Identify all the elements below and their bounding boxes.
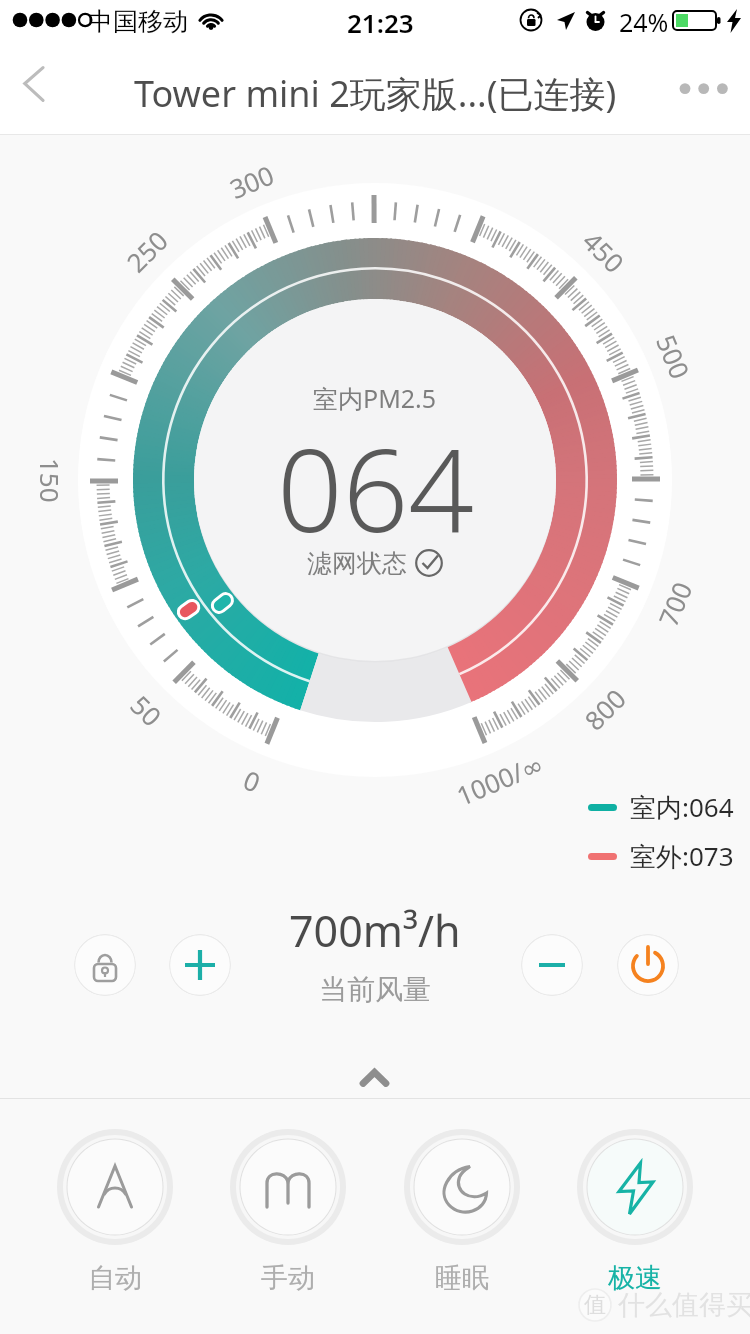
staticText: 当前风量 — [319, 972, 431, 1007]
staticText: 滤网状态 — [307, 548, 407, 579]
staticText: 300 — [224, 156, 279, 206]
button[interactable]: 睡眠 — [404, 1129, 520, 1295]
staticText: 室内PM2.5 — [313, 381, 437, 415]
staticText: 什么值得买 — [618, 1288, 750, 1322]
button[interactable]: Child lock — [74, 934, 136, 996]
staticText: 21:23 — [347, 5, 414, 40]
staticText: 50 — [124, 687, 170, 733]
button[interactable]: 手动 — [230, 1129, 346, 1295]
staticText: 1000/∞ — [451, 746, 548, 813]
staticText: 500 — [649, 329, 699, 384]
button[interactable]: 自动 — [57, 1129, 173, 1295]
staticText: 150 — [33, 458, 68, 503]
button[interactable]: Power — [617, 934, 679, 996]
staticText: 室内:064 — [630, 789, 734, 825]
button[interactable]: Decrease fan speed — [521, 934, 583, 996]
button[interactable]: Expand panel — [330, 1058, 420, 1098]
staticText: 700 — [650, 576, 699, 631]
button[interactable]: More options — [672, 56, 750, 134]
staticText: 手动 — [261, 1261, 315, 1295]
staticText: Tower mini 2玩家版...(已连接) — [134, 69, 617, 118]
staticText: 450 — [576, 223, 632, 280]
staticText: 064 — [277, 409, 474, 566]
staticText: 250 — [118, 223, 175, 279]
staticText: 自动 — [88, 1261, 142, 1295]
staticText: 极速 — [608, 1261, 662, 1295]
button[interactable]: Increase fan speed — [169, 934, 231, 996]
button[interactable]: 极速 — [577, 1129, 693, 1295]
staticText: 0 — [239, 762, 266, 800]
button[interactable]: Back — [0, 56, 70, 134]
staticText: 700m³/h — [289, 901, 461, 960]
staticText: 值 — [584, 1291, 606, 1319]
staticText: 中国移动 — [88, 6, 188, 37]
staticText: 室外:073 — [630, 838, 734, 874]
staticText: 800 — [576, 681, 633, 737]
staticText: 睡眠 — [435, 1261, 489, 1295]
staticText: 24% — [619, 5, 669, 39]
